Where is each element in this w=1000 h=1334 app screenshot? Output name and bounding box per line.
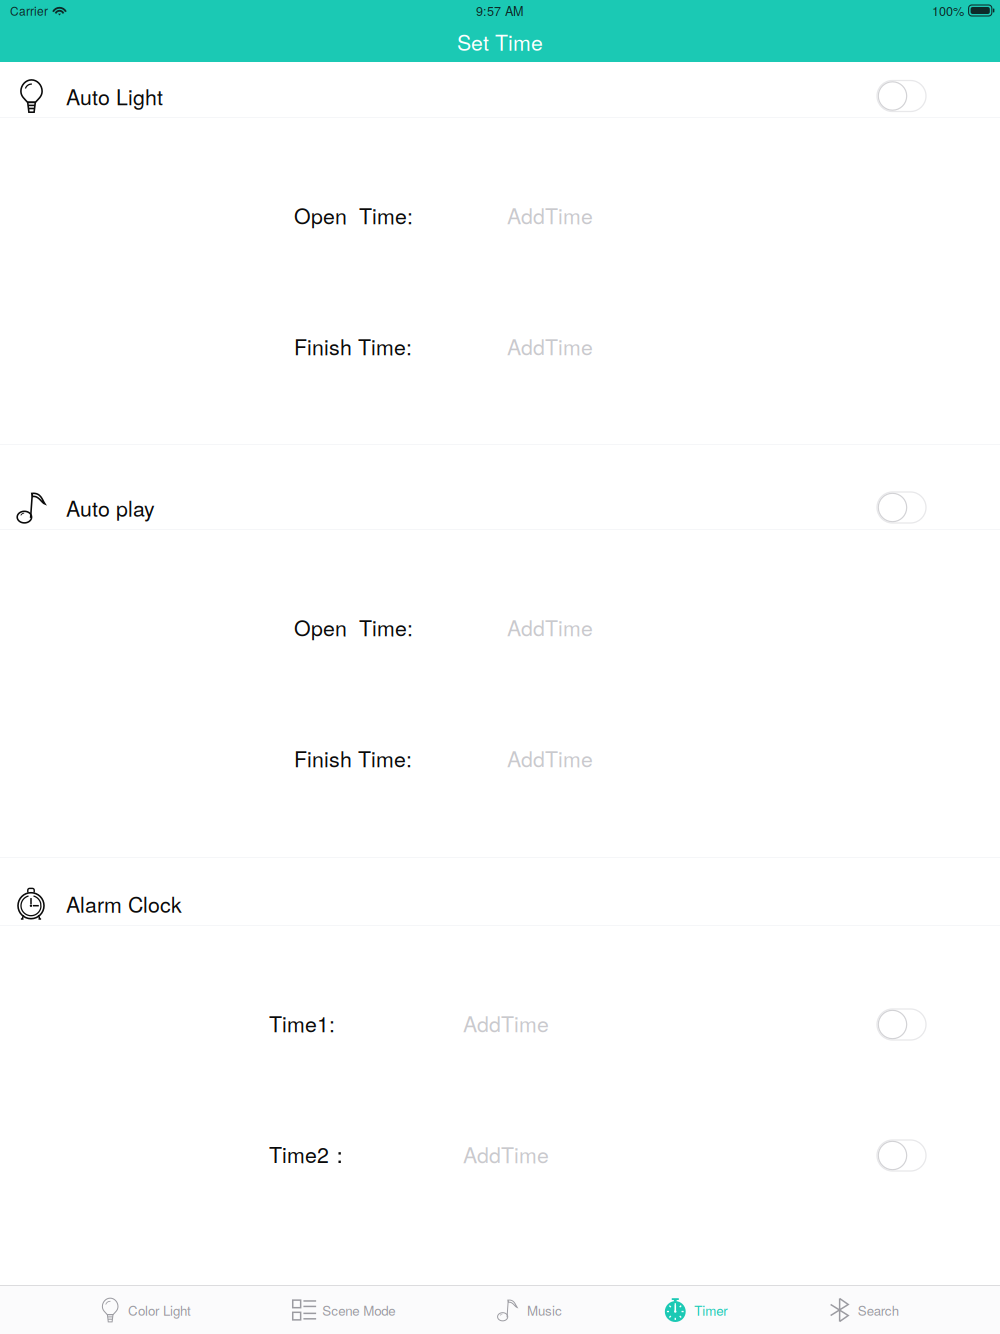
staticText: AddTime [463, 1008, 549, 1038]
staticText: Set Time [457, 26, 543, 57]
button[interactable]: Open Time: [0, 563, 1000, 694]
button[interactable]: Color Light [101, 1286, 191, 1334]
staticText: Carrier [10, 2, 48, 19]
button[interactable]: Scene Mode [292, 1286, 395, 1334]
button[interactable]: Search [829, 1286, 899, 1334]
staticText: Time1: [269, 1008, 335, 1038]
staticText: 9:57 AM [476, 1, 524, 19]
button[interactable]: Toggle [877, 1009, 926, 1040]
button[interactable]: Open Time: [0, 151, 1000, 282]
staticText: Open Time: [294, 612, 413, 642]
staticText: Music [527, 1300, 562, 1320]
button[interactable]: Alarm Clock [0, 858, 1000, 925]
button[interactable]: Time2： [0, 1090, 1000, 1221]
button[interactable]: Auto play [0, 445, 1000, 529]
staticText: AddTime [507, 200, 593, 230]
button[interactable]: Time1: [0, 959, 1000, 1090]
button[interactable]: Toggle [877, 1140, 926, 1171]
staticText: AddTime [507, 743, 593, 773]
button[interactable]: Toggle [877, 492, 926, 523]
button[interactable]: Music [497, 1286, 562, 1334]
staticText: 100% [932, 1, 964, 19]
staticText: AddTime [507, 612, 593, 642]
button[interactable]: Finish Time: [0, 694, 1000, 825]
staticText: Search [858, 1300, 899, 1320]
staticText: Auto play [66, 492, 155, 523]
staticText: Time2： [269, 1139, 350, 1169]
staticText: AddTime [463, 1139, 549, 1169]
staticText: Timer [694, 1300, 727, 1320]
staticText: Open Time: [294, 200, 413, 230]
staticText: Finish Time: [294, 331, 412, 361]
staticText: AddTime [507, 331, 593, 361]
staticText: Alarm Clock [66, 888, 182, 919]
button[interactable]: Auto Light [0, 62, 1000, 117]
button[interactable]: Toggle [877, 80, 926, 111]
staticText: Scene Mode [322, 1300, 395, 1320]
button[interactable]: Finish Time: [0, 282, 1000, 413]
staticText: Color Light [128, 1300, 191, 1320]
button[interactable]: Timer [663, 1286, 727, 1334]
staticText: Auto Light [66, 81, 163, 111]
staticText: Finish Time: [294, 743, 412, 773]
